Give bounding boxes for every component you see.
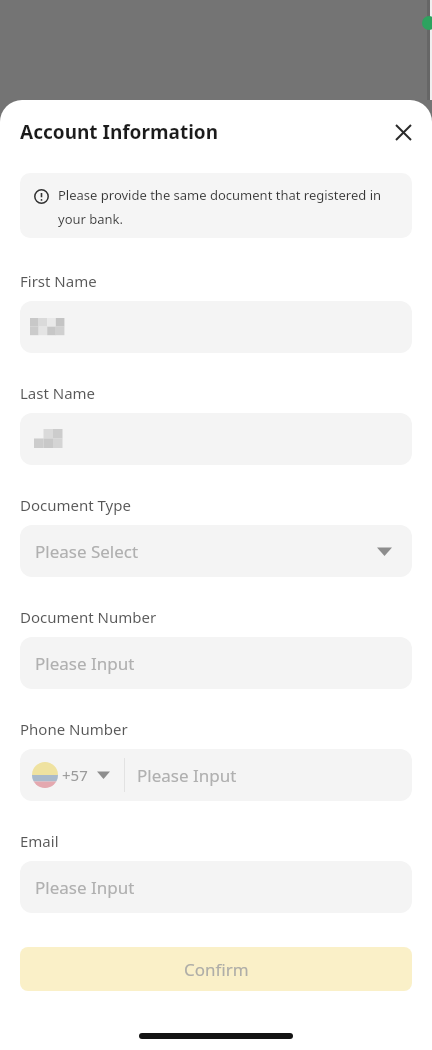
staticText: +57: [62, 765, 88, 785]
staticText: Please Select: [35, 540, 139, 563]
button[interactable]: [20, 413, 412, 465]
staticText: Please Input: [137, 764, 237, 787]
staticText: Account Information: [20, 119, 219, 145]
button[interactable]: [20, 301, 412, 353]
button[interactable]: Please Input: [20, 637, 412, 689]
staticText: Please Input: [35, 876, 135, 899]
staticText: Document Type: [20, 495, 131, 515]
button[interactable]: Please Select: [20, 525, 412, 577]
button[interactable]: [389, 118, 417, 146]
button[interactable]: Please Input: [20, 861, 412, 913]
button[interactable]: Confirm: [20, 947, 412, 991]
staticText: Document Number: [20, 607, 157, 627]
staticText: Please provide the same document that re…: [58, 186, 382, 228]
button[interactable]: +57: [20, 749, 412, 801]
staticText: Email: [20, 831, 59, 851]
staticText: Confirm: [184, 958, 249, 981]
staticText: Please Input: [35, 652, 135, 675]
staticText: Phone Number: [20, 719, 128, 739]
staticText: Last Name: [20, 383, 96, 403]
staticText: First Name: [20, 271, 97, 291]
